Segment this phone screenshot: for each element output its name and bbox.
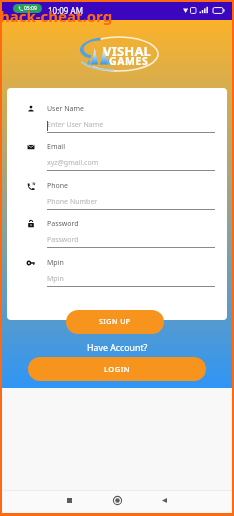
- staticText: Have Account?: [87, 342, 148, 354]
- staticText: Password: [47, 235, 79, 245]
- button[interactable]: LOGIN: [28, 357, 206, 381]
- staticText: User Name: [47, 104, 84, 114]
- button[interactable]: Home: [104, 489, 130, 512]
- button[interactable]: Recent apps: [56, 489, 82, 512]
- staticText: 05:09: [24, 5, 37, 12]
- staticText: Mpin: [47, 258, 64, 268]
- staticText: Phone: [47, 181, 69, 191]
- staticText: LOGIN: [104, 364, 131, 374]
- button[interactable]: SIGN UP: [66, 310, 164, 334]
- staticText: VISHAL: [103, 42, 152, 60]
- staticText: Enter User Name: [47, 120, 104, 130]
- staticText: xyz@gmail.com: [47, 158, 99, 168]
- button[interactable]: Back: [151, 489, 177, 512]
- staticText: GAMES: [109, 54, 149, 68]
- staticText: Password: [47, 219, 79, 229]
- staticText: SIGN UP: [99, 317, 131, 327]
- staticText: 10:09 AM: [48, 5, 83, 16]
- staticText: Email: [47, 142, 65, 152]
- staticText: Mpin: [47, 274, 64, 284]
- staticText: Phone Number: [47, 197, 98, 207]
- staticText: hack-cheat.org: [0, 6, 113, 26]
